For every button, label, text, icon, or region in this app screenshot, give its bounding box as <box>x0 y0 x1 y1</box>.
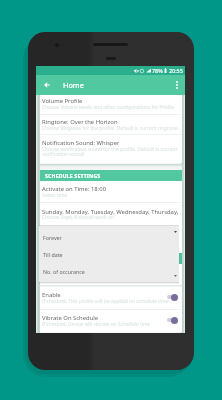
staticText: Forever <box>43 234 62 241</box>
button[interactable]: More options <box>170 75 184 95</box>
button[interactable] <box>40 95 182 113</box>
staticText: Sunday, Monday, Tuesday, Wednesday, Thur… <box>42 208 179 216</box>
button[interactable]: Till date <box>39 246 179 263</box>
staticText: If checked, Device will vibrate on Sched… <box>42 321 151 328</box>
button[interactable]: Toggle <box>166 315 180 325</box>
staticText: Vibrate On Schedule <box>42 314 99 322</box>
button[interactable] <box>40 310 182 331</box>
staticText: 78% <box>152 67 163 74</box>
button[interactable] <box>40 287 182 309</box>
button[interactable]: Back <box>38 75 55 95</box>
button[interactable]: No. of occurance <box>39 263 179 280</box>
button[interactable] <box>40 182 182 202</box>
button[interactable]: Toggle <box>166 292 180 302</box>
button[interactable]: Forever <box>39 229 179 246</box>
staticText: Activate on Time: 18:00 <box>42 185 107 193</box>
staticText: Home <box>63 80 84 90</box>
staticText: Ringtone: Over the Horizon <box>42 118 118 126</box>
staticText: Enable <box>42 291 61 299</box>
staticText: SCHEDULE SETTINGS <box>45 172 101 179</box>
staticText: 20:55 <box>169 67 183 74</box>
button[interactable] <box>40 135 182 163</box>
staticText: Choose Ringtone for the profile. Default… <box>42 125 178 132</box>
staticText: If checked, This profile will be applied… <box>42 298 170 305</box>
staticText: notification sound <box>42 151 84 158</box>
staticText: Choose notification sound for the profil… <box>42 146 178 153</box>
staticText: Till date <box>43 251 63 258</box>
staticText: Select time <box>42 192 68 199</box>
staticText: Choose Volume levels and other configura… <box>42 104 175 111</box>
staticText: No. of occurance <box>43 268 85 275</box>
button[interactable] <box>40 114 182 134</box>
staticText: Volume Profile <box>42 97 83 105</box>
button[interactable] <box>40 203 182 224</box>
staticText: Notification Sound: Whisper <box>42 139 120 147</box>
staticText: Choose Days, it should work on <box>42 214 115 221</box>
